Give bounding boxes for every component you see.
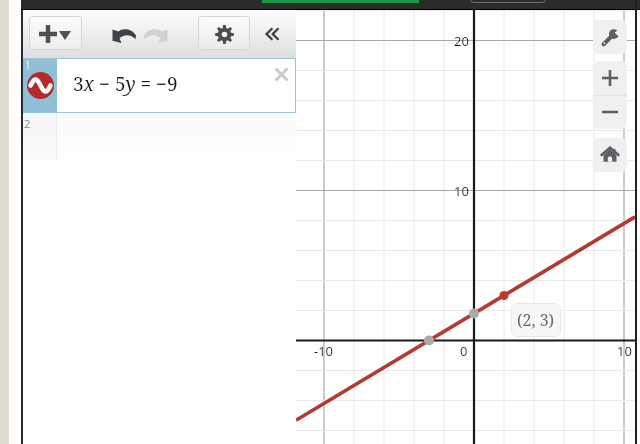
button[interactable]: Settings <box>198 16 250 50</box>
staticText: 10 <box>617 342 632 360</box>
button[interactable]: Zoom out <box>593 95 627 129</box>
staticText: 0 <box>460 342 468 360</box>
button[interactable]: Collapse panel <box>257 20 287 48</box>
staticText: (2, 3) <box>517 309 555 331</box>
button[interactable]: Zoom in <box>593 61 627 95</box>
staticText: 3x − 5y = −9 <box>73 71 178 97</box>
staticText: 2 <box>24 116 31 131</box>
staticText: 10 <box>454 182 469 200</box>
button[interactable]: 1 <box>21 58 296 113</box>
button[interactable]: Undo <box>107 22 141 48</box>
button[interactable]: Redo <box>140 22 174 48</box>
button[interactable]: Delete expression <box>269 62 293 86</box>
staticText: -10 <box>314 342 334 360</box>
button[interactable]: 2 <box>21 113 296 161</box>
staticText: 20 <box>454 32 469 50</box>
button[interactable]: Graph settings <box>593 20 627 54</box>
button[interactable]: Add expression <box>29 16 82 50</box>
button[interactable]: Home <box>593 138 627 172</box>
staticText: 1 <box>25 58 31 72</box>
